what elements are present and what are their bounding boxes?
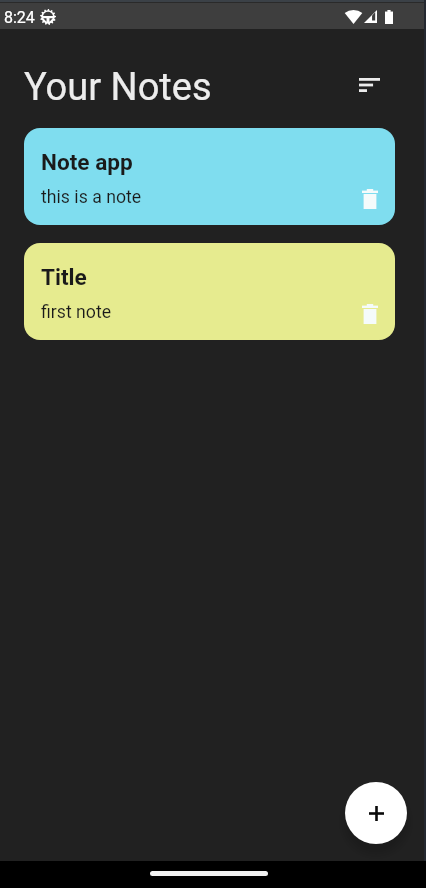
button[interactable]: Delete note: [357, 301, 383, 327]
staticText: 8:24: [4, 8, 35, 27]
staticText: this is a note: [41, 187, 142, 208]
button[interactable]: Title: [24, 243, 395, 340]
staticText: Your Notes: [24, 65, 212, 110]
staticText: Note app: [41, 149, 133, 175]
button[interactable]: Sort notes: [352, 75, 386, 95]
staticText: first note: [41, 302, 112, 323]
button[interactable]: Note app: [24, 128, 395, 225]
staticText: Title: [41, 264, 87, 290]
button[interactable]: Add note: [345, 782, 407, 844]
button[interactable]: Delete note: [357, 186, 383, 212]
